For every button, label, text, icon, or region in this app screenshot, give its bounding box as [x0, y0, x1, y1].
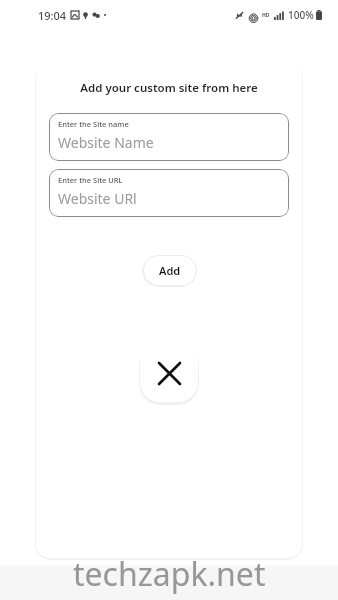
- staticText: Website Name: [58, 133, 154, 152]
- button[interactable]: Close: [140, 344, 198, 402]
- button[interactable]: Enter the Site name: [49, 113, 289, 161]
- staticText: Website URl: [58, 189, 137, 208]
- staticText: Enter the Site name: [58, 119, 129, 129]
- staticText: Enter the Site URL: [58, 175, 123, 185]
- staticText: 19:04: [38, 8, 67, 23]
- button[interactable]: Enter the Site URL: [49, 169, 289, 217]
- staticText: Add: [159, 263, 181, 278]
- staticText: techzapk.net: [73, 552, 266, 596]
- staticText: HD: [262, 12, 270, 19]
- button[interactable]: Add: [143, 255, 197, 286]
- staticText: 100%: [288, 8, 314, 22]
- staticText: Add your custom site from here: [80, 80, 258, 96]
